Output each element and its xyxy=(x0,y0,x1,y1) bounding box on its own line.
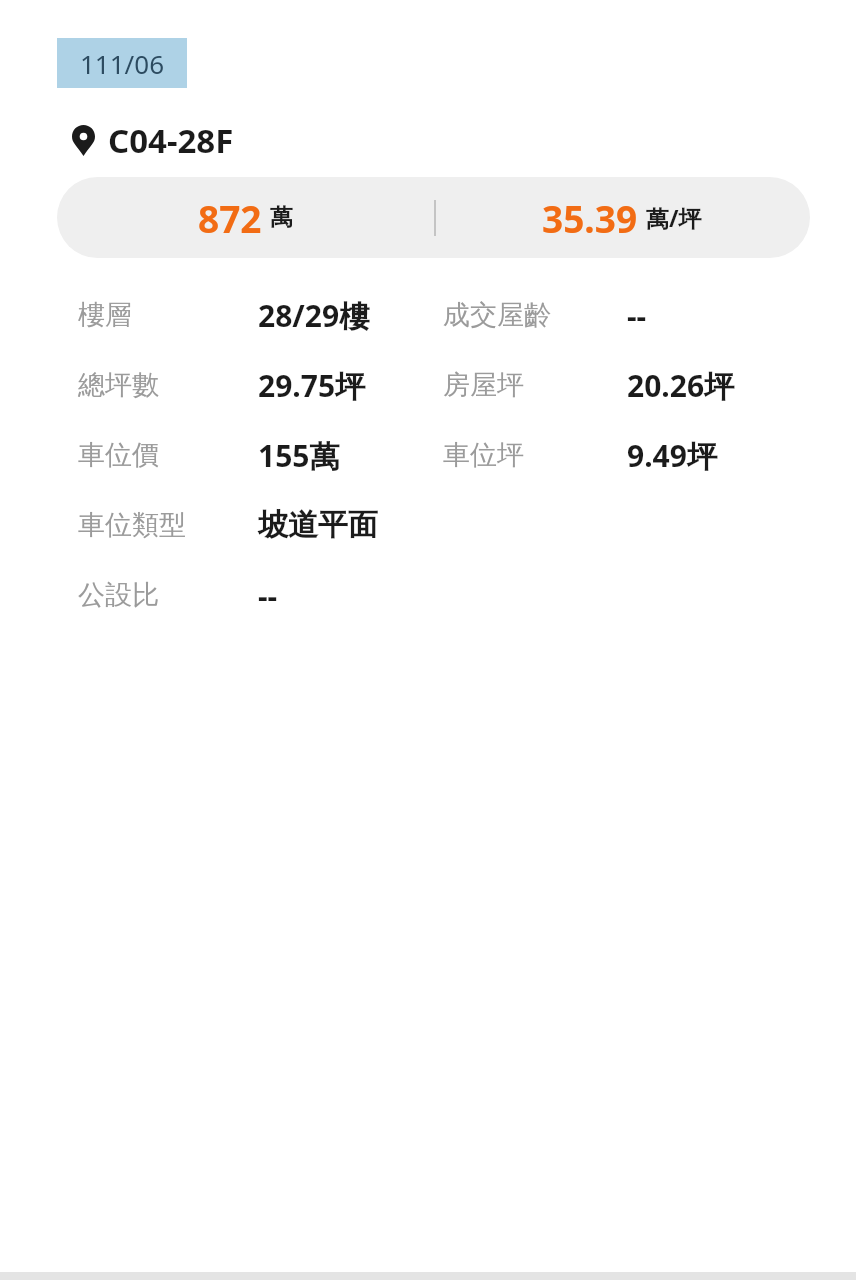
staticText: 155萬 xyxy=(258,435,340,476)
staticText: C04-28F xyxy=(108,118,234,162)
staticText: 房屋坪 xyxy=(443,368,524,402)
staticText: -- xyxy=(258,575,278,616)
button[interactable]: 111/06 xyxy=(57,38,187,88)
staticText: 車位價 xyxy=(78,438,159,472)
staticText: 28/29樓 xyxy=(258,295,370,336)
staticText: 成交屋齡 xyxy=(443,298,551,332)
staticText: 35.39 xyxy=(542,193,638,243)
staticText: 20.26坪 xyxy=(627,365,735,406)
staticText: 公設比 xyxy=(78,578,159,612)
other: Location xyxy=(72,125,95,156)
staticText: 樓層 xyxy=(78,298,132,332)
button[interactable]: Location xyxy=(0,118,856,162)
staticText: 29.75坪 xyxy=(258,365,366,406)
staticText: 車位類型 xyxy=(78,508,186,542)
staticText: 萬/坪 xyxy=(646,202,702,233)
staticText: 萬 xyxy=(270,203,293,232)
button[interactable]: 872 xyxy=(57,177,810,258)
staticText: -- xyxy=(627,295,647,336)
staticText: 111/06 xyxy=(80,46,165,81)
staticText: 總坪數 xyxy=(78,368,159,402)
staticText: 9.49坪 xyxy=(627,435,717,476)
staticText: 872 xyxy=(198,193,262,243)
staticText: 車位坪 xyxy=(443,438,524,472)
staticText: 坡道平面 xyxy=(258,506,378,544)
